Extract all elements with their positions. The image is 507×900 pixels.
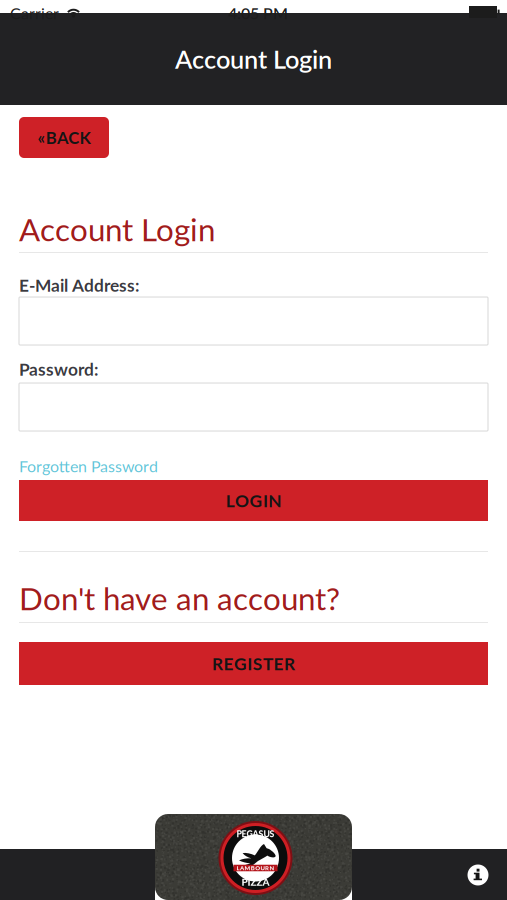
- staticText: PEGASUS: [236, 829, 274, 839]
- staticText: REGISTER: [212, 653, 295, 674]
- button[interactable]: LOGIN: [19, 480, 488, 521]
- staticText: Forgotten Password: [19, 456, 158, 476]
- staticText: Account Login: [19, 210, 215, 248]
- staticText: Don't have an account?: [19, 579, 340, 617]
- button[interactable]: Info: [467, 864, 488, 885]
- staticText: LAMBOURN: [237, 864, 274, 872]
- button[interactable]: REGISTER: [19, 642, 488, 685]
- staticText: Carrier: [10, 3, 59, 23]
- staticText: PIZZA: [241, 876, 269, 888]
- button[interactable]: Forgotten Password: [19, 456, 488, 476]
- staticText: 4:05 PM: [228, 3, 288, 23]
- staticText: Password:: [19, 359, 98, 379]
- staticText: E-Mail Address:: [19, 275, 139, 295]
- staticText: Account Login: [175, 44, 332, 74]
- staticText: «BACK: [37, 127, 91, 147]
- staticText: LOGIN: [226, 490, 281, 511]
- button[interactable]: «BACK: [19, 117, 109, 158]
